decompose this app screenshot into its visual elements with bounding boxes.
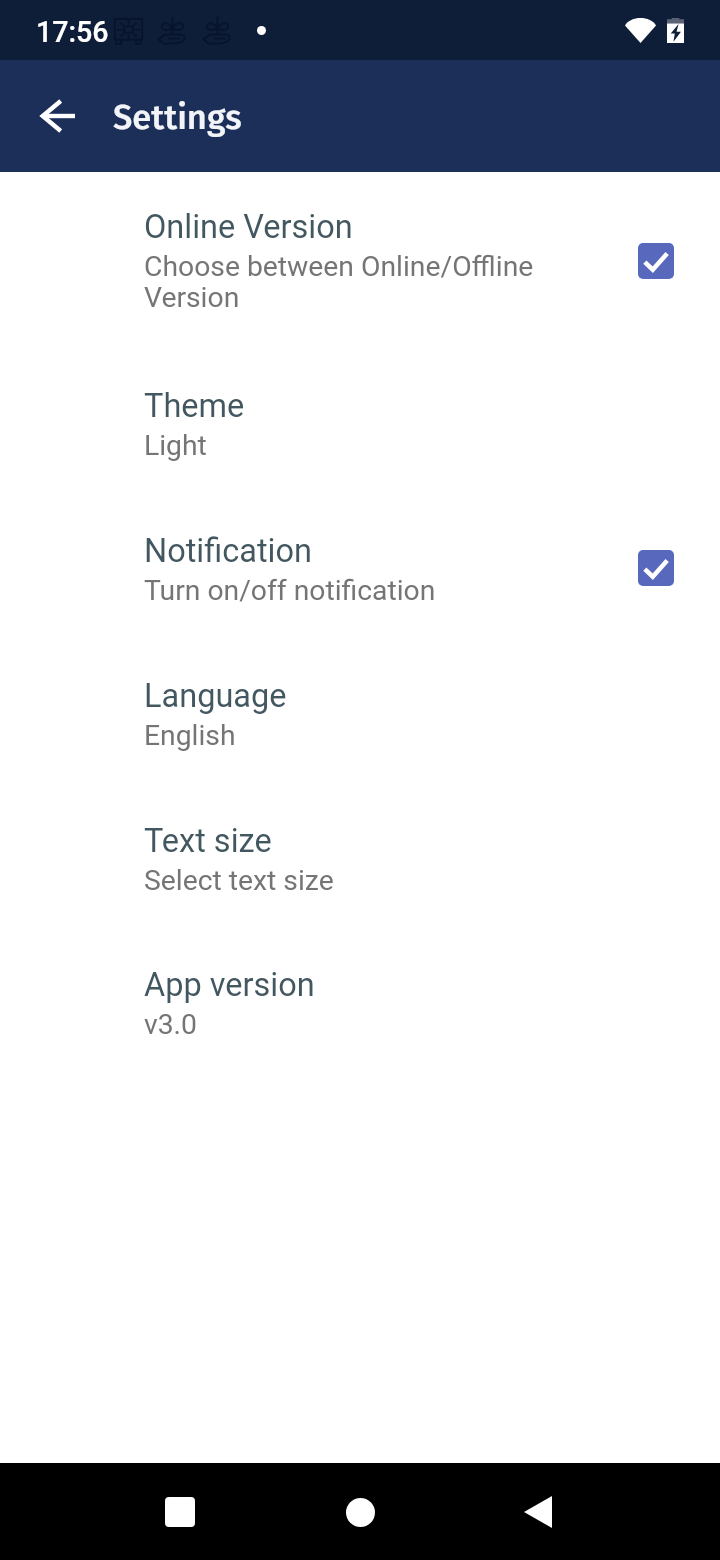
button[interactable]: Toggle Notification <box>638 550 674 586</box>
button[interactable]: Recent apps <box>145 1477 215 1547</box>
staticText: Text size <box>144 822 272 860</box>
button[interactable]: Theme <box>0 387 720 458</box>
staticText: Settings <box>113 97 242 138</box>
staticText: v3.0 <box>144 1008 197 1041</box>
staticText: Light <box>144 429 207 462</box>
staticText: Language <box>144 677 287 715</box>
staticText: Online Version <box>144 208 353 246</box>
button[interactable]: Back <box>503 1477 573 1547</box>
button[interactable]: App version <box>0 966 720 1037</box>
button[interactable]: Back <box>22 80 94 152</box>
button[interactable]: Online Version <box>0 208 720 310</box>
button[interactable]: Text size <box>0 822 720 893</box>
staticText: Choose between Online/Offline Version <box>144 250 544 314</box>
staticText: English <box>144 719 236 752</box>
staticText: App version <box>144 966 315 1004</box>
staticText: Theme <box>144 387 245 425</box>
staticText: 17:56 <box>36 15 109 49</box>
button[interactable]: Toggle Online Version <box>638 243 674 279</box>
button[interactable]: Language <box>0 677 720 748</box>
staticText: Select text size <box>144 864 334 897</box>
button[interactable]: Notification <box>0 532 720 603</box>
button[interactable]: Home <box>325 1477 395 1547</box>
staticText: Notification <box>144 532 312 570</box>
staticText: Turn on/off notification <box>144 574 436 607</box>
